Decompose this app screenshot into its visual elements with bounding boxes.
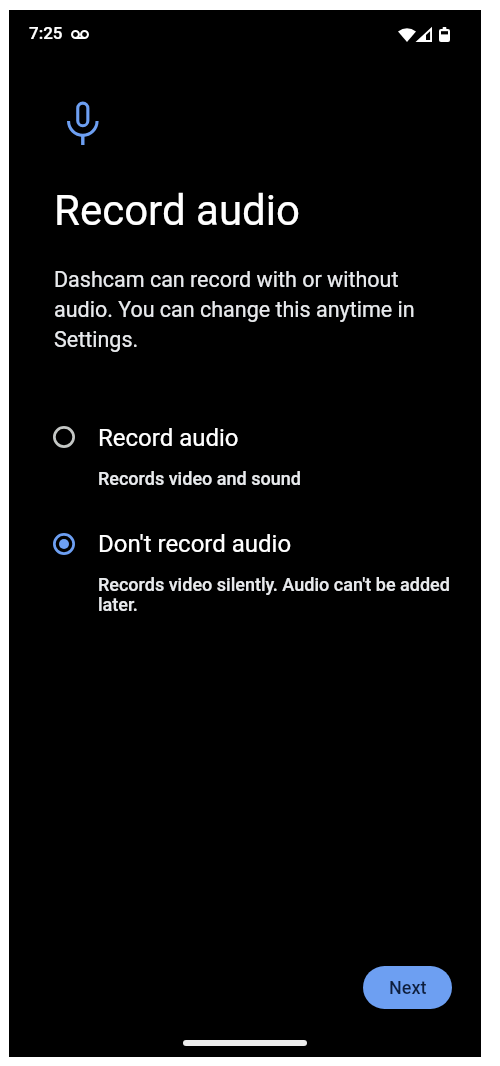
staticText: Next: [389, 977, 427, 998]
other: Voicemail: [71, 30, 89, 39]
staticText: Don't record audio: [98, 530, 292, 558]
staticText: Record audio: [98, 424, 239, 452]
staticText: 7:25: [29, 23, 63, 43]
staticText: Records video silently. Audio can't be a…: [98, 575, 458, 615]
button[interactable]: Record audio: [9, 415, 481, 487]
staticText: Record audio: [54, 186, 300, 235]
other: Microphone: [67, 91, 101, 147]
button[interactable]: Don't record audio: [9, 522, 481, 614]
button[interactable]: Next: [363, 966, 452, 1009]
staticText: Dashcam can record with or without audio…: [54, 263, 432, 353]
staticText: Records video and sound: [98, 469, 358, 489]
